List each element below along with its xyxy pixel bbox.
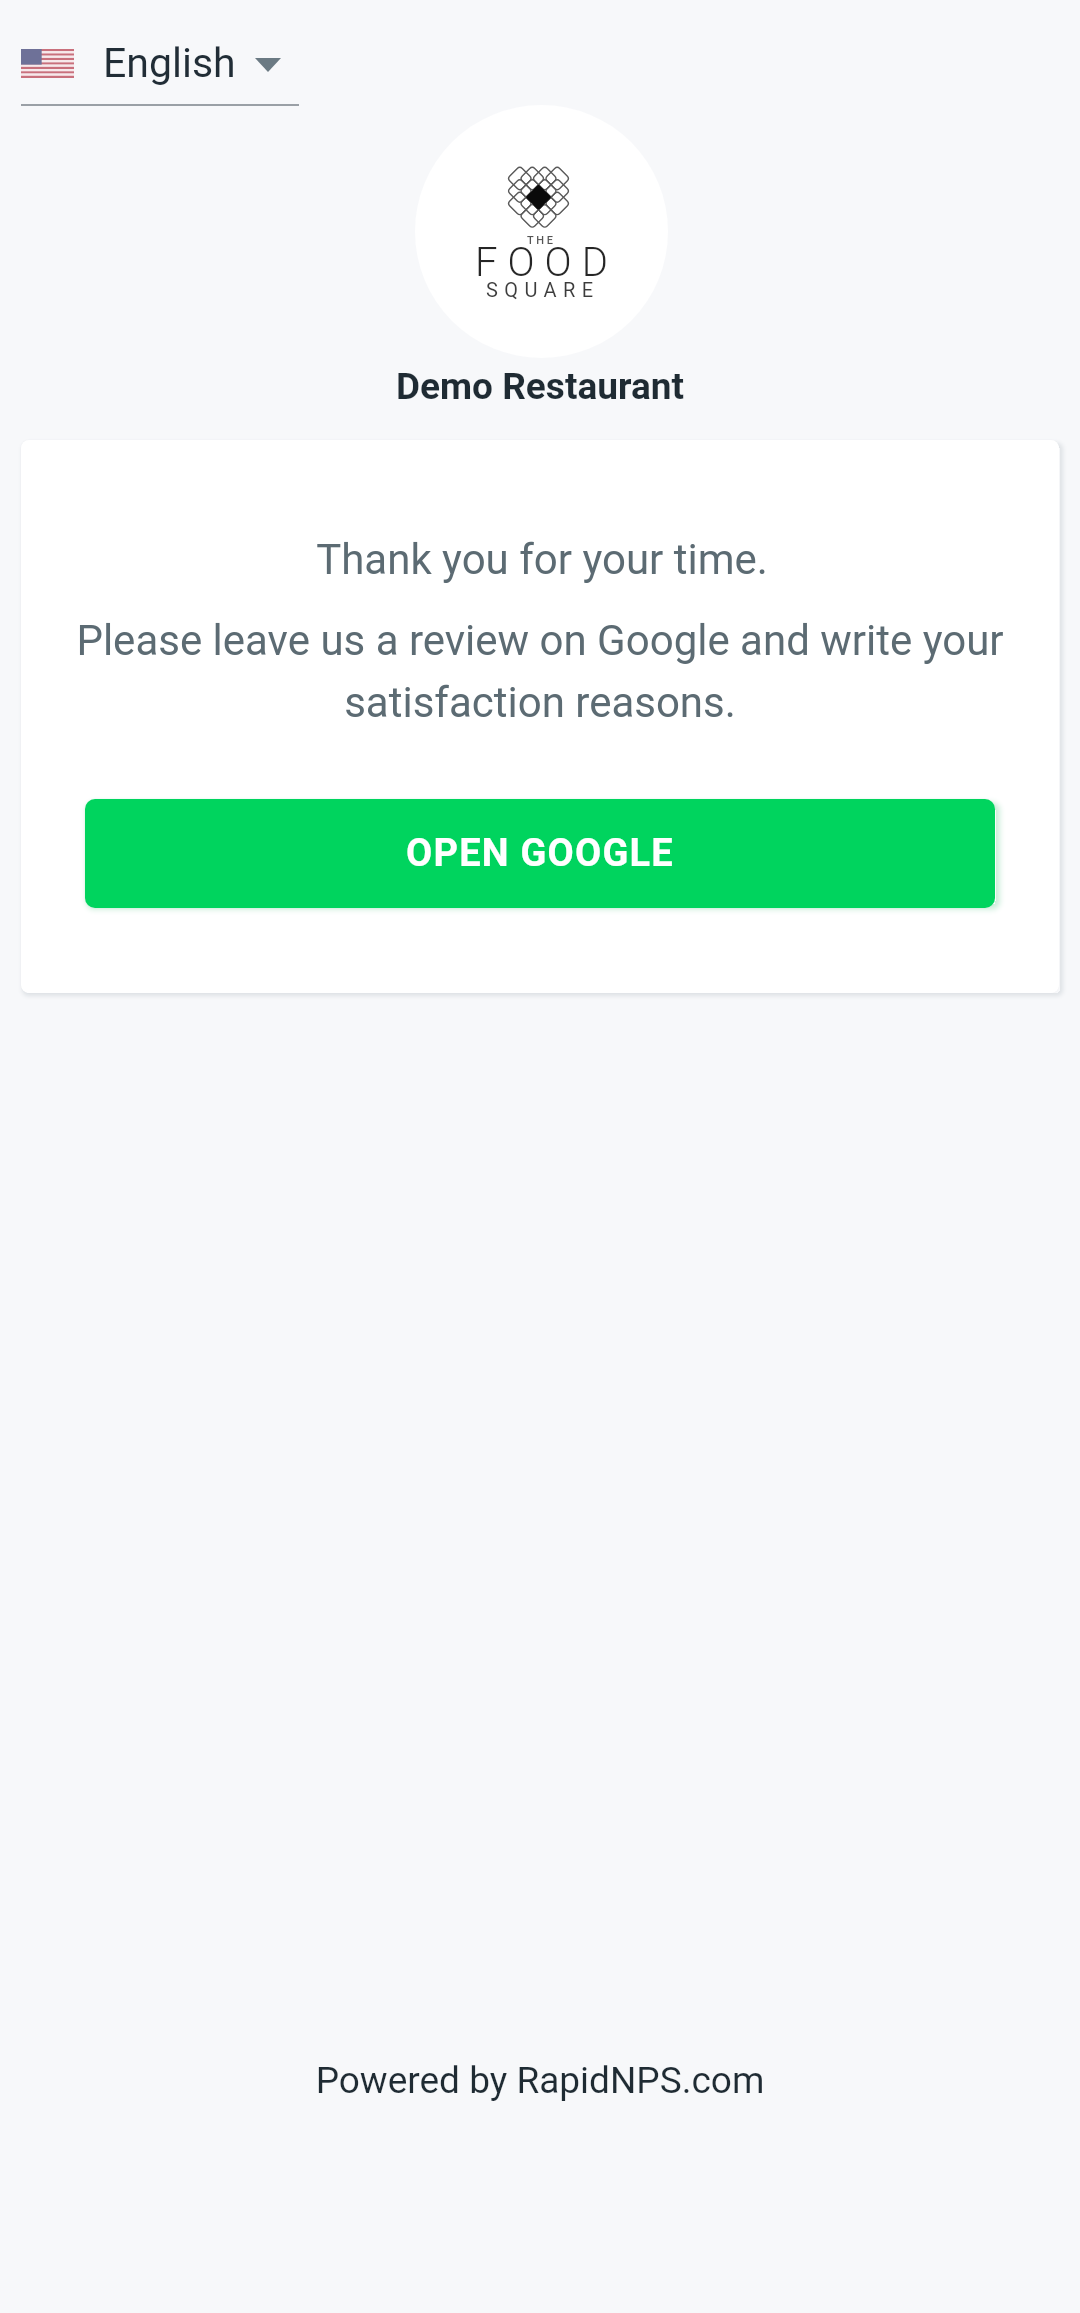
staticText: Demo Restaurant	[0, 365, 1080, 408]
staticText: THE	[527, 234, 556, 247]
staticText: Thank you for your time.	[23, 535, 1059, 584]
staticText: Please leave us a review on Google and w…	[33, 616, 1047, 727]
staticText: SQUARE	[486, 278, 600, 301]
button[interactable]: OPEN GOOGLE	[85, 799, 995, 908]
staticText: FOOD	[475, 239, 618, 286]
staticText: OPEN GOOGLE	[406, 831, 674, 876]
staticText: Powered by RapidNPS.com	[0, 2059, 1080, 2102]
staticText: English	[103, 39, 236, 87]
button[interactable]: Select language: English	[21, 39, 320, 106]
